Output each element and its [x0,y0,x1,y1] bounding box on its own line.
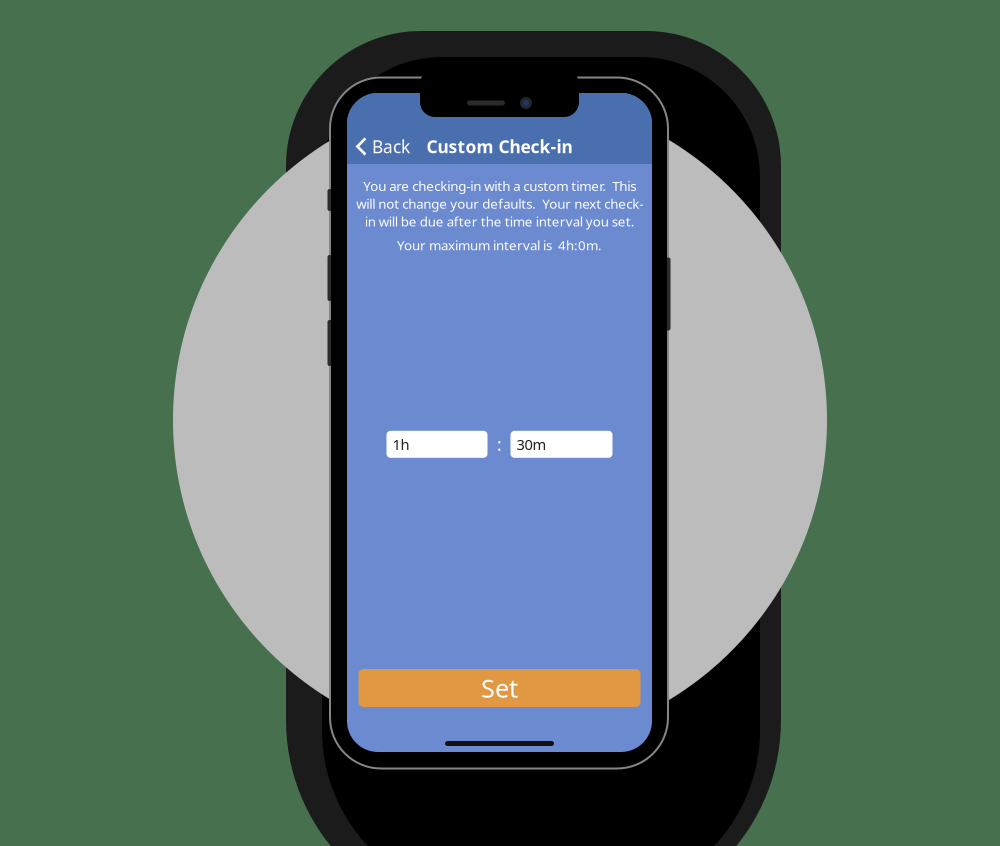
button[interactable]: Set [358,669,640,707]
staticText: You are checking-in with a custom timer.… [356,177,643,230]
button[interactable]: 30m [510,431,612,458]
staticText: Custom Check-in [426,135,572,158]
staticText: 1h [392,435,409,454]
staticText: 30m [516,435,546,454]
staticText: : [497,433,502,456]
staticText: Your maximum interval is 4h:0m. [397,236,602,254]
staticText: Back [372,135,410,158]
staticText: Set [481,671,518,705]
button[interactable]: Back [347,129,420,164]
button[interactable]: 1h [386,431,487,458]
